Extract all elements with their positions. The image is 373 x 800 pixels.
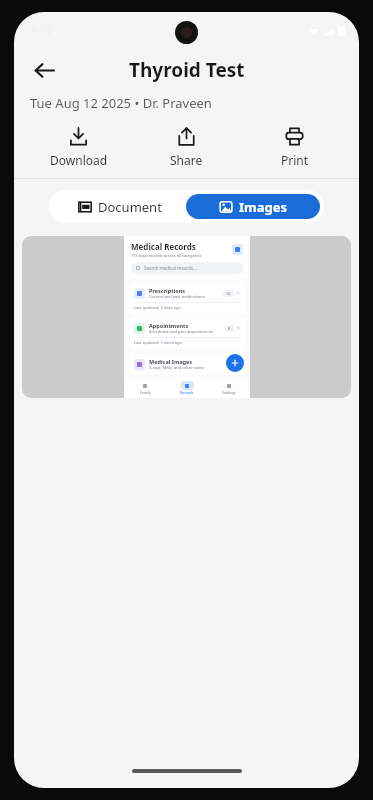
button[interactable]: Share [139,122,234,172]
staticText: Last updated: 1 week ago [134,340,182,345]
staticText: Current and past medications [149,294,205,299]
button[interactable]: Download [31,122,126,172]
button[interactable]: Back [24,50,64,90]
staticText: 115 total records across all categories [131,253,202,258]
staticText: Medical Images [149,358,193,365]
staticText: > [237,290,240,296]
staticText: Records [180,390,194,395]
staticText: Prescriptions [149,287,186,294]
staticText: X-rays, MRIs, and other scans [149,365,204,370]
staticText: 8 [228,326,231,331]
button[interactable]: Document [53,194,186,219]
staticText: Family [140,390,151,395]
staticText: Medical Records [131,241,196,252]
button[interactable]: Print [247,122,342,172]
staticText: Share [170,152,203,168]
staticText: Download [50,152,108,168]
staticText: Print [281,152,309,168]
staticText: Scheduled and past appointments [149,329,214,334]
staticText: Images [239,198,288,216]
staticText: Last updated: 2 days ago [134,305,181,310]
staticText: Tue Aug 12 2025 • Dr. Praveen [30,94,212,112]
staticText: Document [98,198,162,216]
staticText: Appointments [149,322,189,329]
staticText: Thyroid Test [129,57,245,83]
staticText: Search medical records... [144,265,197,271]
staticText: 12 [226,291,231,296]
staticText: Settings [222,390,236,395]
button[interactable]: Images [186,194,320,219]
staticText: > [237,325,240,331]
